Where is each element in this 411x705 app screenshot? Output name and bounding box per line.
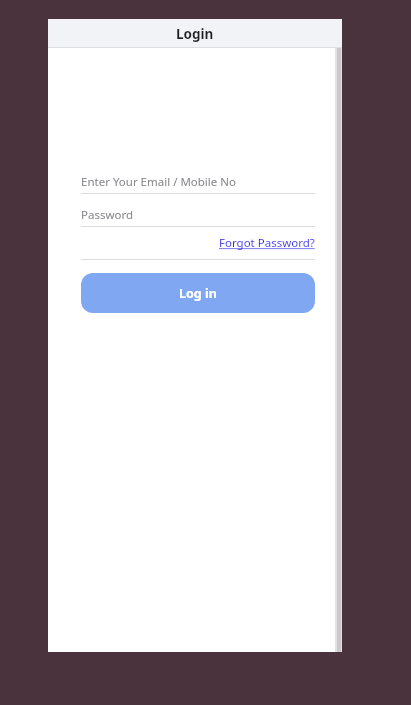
staticText: Log in xyxy=(179,285,217,302)
staticText: Forgot Password? xyxy=(219,235,315,251)
button[interactable]: Forgot Password? xyxy=(219,227,315,259)
button[interactable]: Enter Your Email / Mobile No xyxy=(81,171,315,194)
button[interactable]: Password xyxy=(81,204,315,227)
staticText: Login xyxy=(176,25,214,43)
staticText: Password xyxy=(81,207,134,223)
staticText: Enter Your Email / Mobile No xyxy=(81,174,236,190)
button[interactable]: Log in xyxy=(81,273,315,313)
